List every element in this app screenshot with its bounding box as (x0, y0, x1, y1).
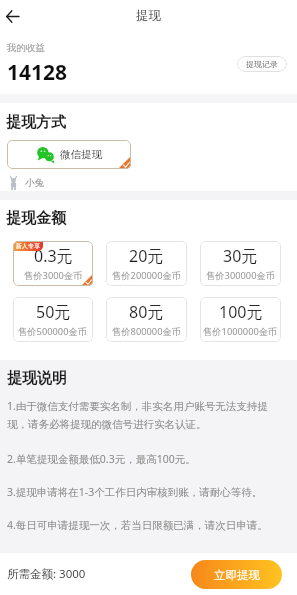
staticText: 100元 (219, 301, 263, 323)
staticText: 立即提现 (214, 568, 260, 582)
staticText: 提现 (136, 8, 161, 24)
button[interactable]: 提现记录 (237, 56, 287, 72)
staticText: 50元 (36, 301, 71, 323)
button[interactable]: 20元 (106, 241, 187, 286)
staticText: 小兔 (25, 177, 44, 189)
staticText: 14128 (7, 58, 68, 87)
staticText: 提现说明 (7, 369, 67, 388)
button[interactable]: 30元 (200, 241, 281, 286)
staticText: 2.单笔提现金额最低0.3元，最高100元。 (7, 452, 273, 466)
button[interactable]: 0.3元 (13, 241, 93, 286)
staticText: 1.由于微信支付需要实名制，非实名用户账号无法支持提现，请务必将提现的微信号进行… (7, 399, 273, 432)
staticText: 售价300000金币 (206, 269, 276, 282)
staticText: 微信提现 (60, 148, 102, 161)
button[interactable]: 微信提现 (7, 140, 131, 169)
button[interactable]: 80元 (106, 297, 187, 342)
staticText: 售价500000金币 (18, 325, 88, 338)
staticText: 4.每日可申请提现一次，若当日限额已满，请次日申请。 (7, 518, 273, 532)
button[interactable]: Back (0, 4, 24, 28)
staticText: 20元 (129, 245, 164, 267)
staticText: 提现金额 (6, 209, 66, 228)
staticText: 新人专享 (16, 242, 40, 250)
staticText: 3.提现申请将在1-3个工作日内审核到账，请耐心等待。 (7, 485, 273, 499)
staticText: 30元 (223, 245, 258, 267)
staticText: 所需金额: 3000 (7, 566, 86, 582)
button[interactable]: 50元 (13, 297, 93, 342)
staticText: 提现方式 (6, 113, 66, 132)
staticText: 售价1000000金币 (203, 325, 278, 338)
staticText: 我的收益 (7, 42, 45, 54)
button[interactable]: 立即提现 (191, 560, 282, 589)
staticText: 0.3元 (34, 245, 73, 267)
staticText: 售价200000金币 (112, 269, 182, 282)
staticText: 售价800000金币 (112, 325, 182, 338)
staticText: 80元 (129, 301, 164, 323)
button[interactable]: 100元 (200, 297, 281, 342)
staticText: 提现记录 (246, 59, 278, 69)
staticText: 售价3000金币 (24, 269, 83, 282)
